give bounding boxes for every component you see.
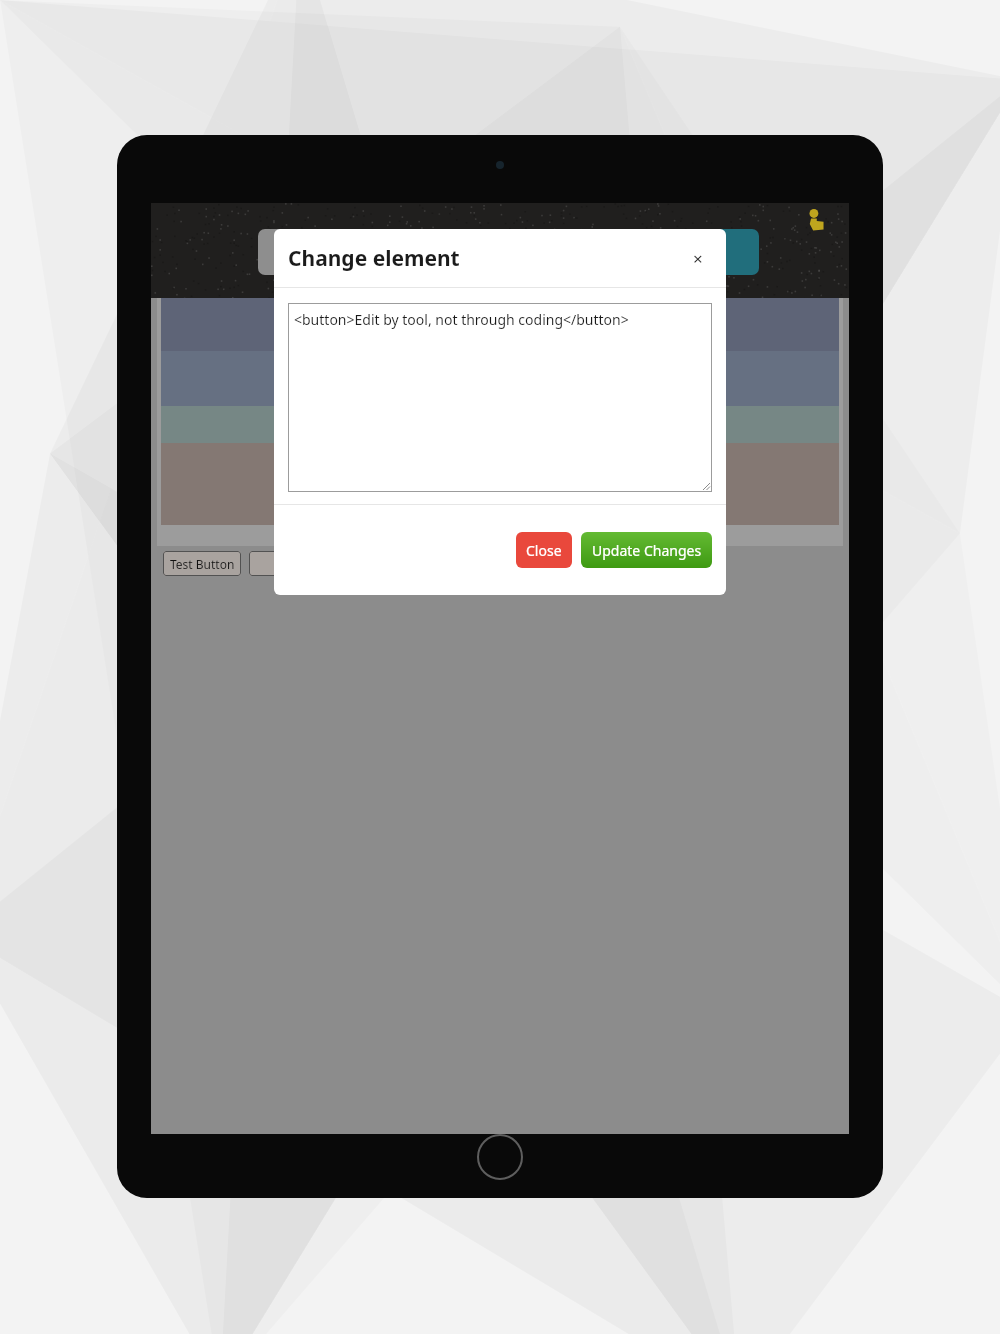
button[interactable] [689,229,759,275]
button[interactable]: Pointer tool [803,208,829,234]
staticText: <button>Edit by tool, not through coding… [294,310,629,329]
button[interactable]: Close [516,532,572,568]
button[interactable]: Update Changes [581,532,712,568]
button[interactable]: <button>Edit by tool, not through coding… [288,303,712,492]
staticText: Update Changes [592,541,702,560]
button[interactable]: Test Button [163,551,241,576]
staticText: Test Button [170,556,235,572]
button[interactable] [249,551,345,576]
staticText: Change element [288,244,460,273]
staticText: × [693,247,703,269]
button[interactable] [258,229,322,275]
staticText: Close [526,541,562,560]
button[interactable]: Home [477,1134,523,1180]
button[interactable]: Close dialog [687,247,709,269]
